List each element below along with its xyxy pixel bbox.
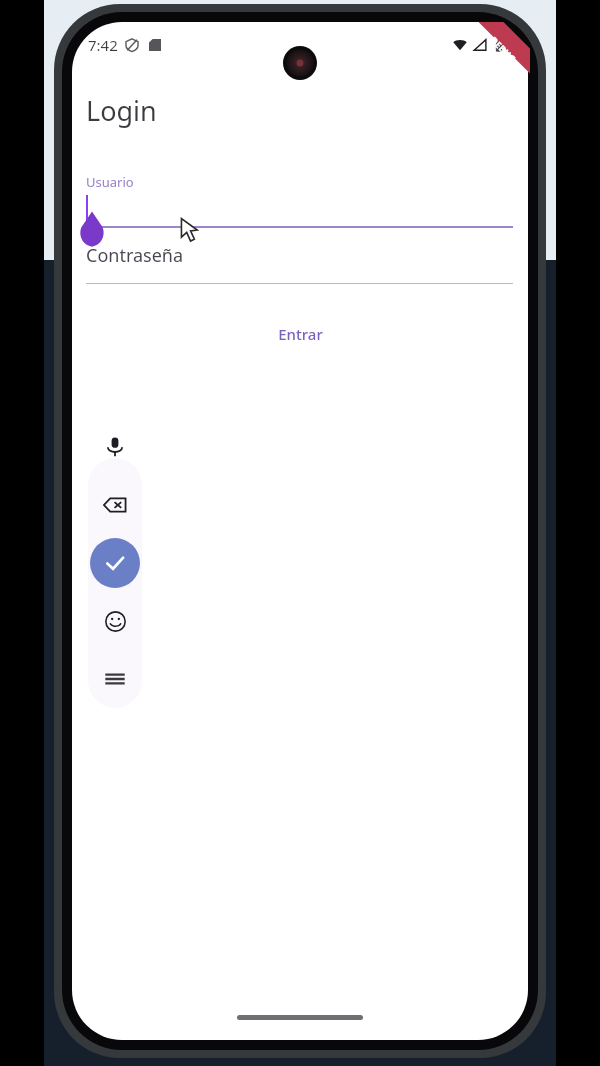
staticText: 7:42 <box>88 35 118 55</box>
button[interactable]: Backspace <box>94 484 136 526</box>
button[interactable]: Voice input <box>94 426 136 468</box>
button[interactable]: Contraseña <box>72 235 528 297</box>
button[interactable]: More options <box>94 658 136 700</box>
button[interactable]: Enter <box>90 538 140 588</box>
staticText: Login <box>86 92 157 129</box>
staticText: Contraseña <box>86 243 184 268</box>
staticText: Usuario <box>86 173 134 191</box>
button[interactable]: Emoji <box>94 600 136 642</box>
staticText: DEBUG <box>488 34 519 64</box>
button[interactable]: Usuario <box>72 173 528 235</box>
button[interactable]: Entrar <box>262 317 338 351</box>
staticText: Entrar <box>278 324 323 344</box>
